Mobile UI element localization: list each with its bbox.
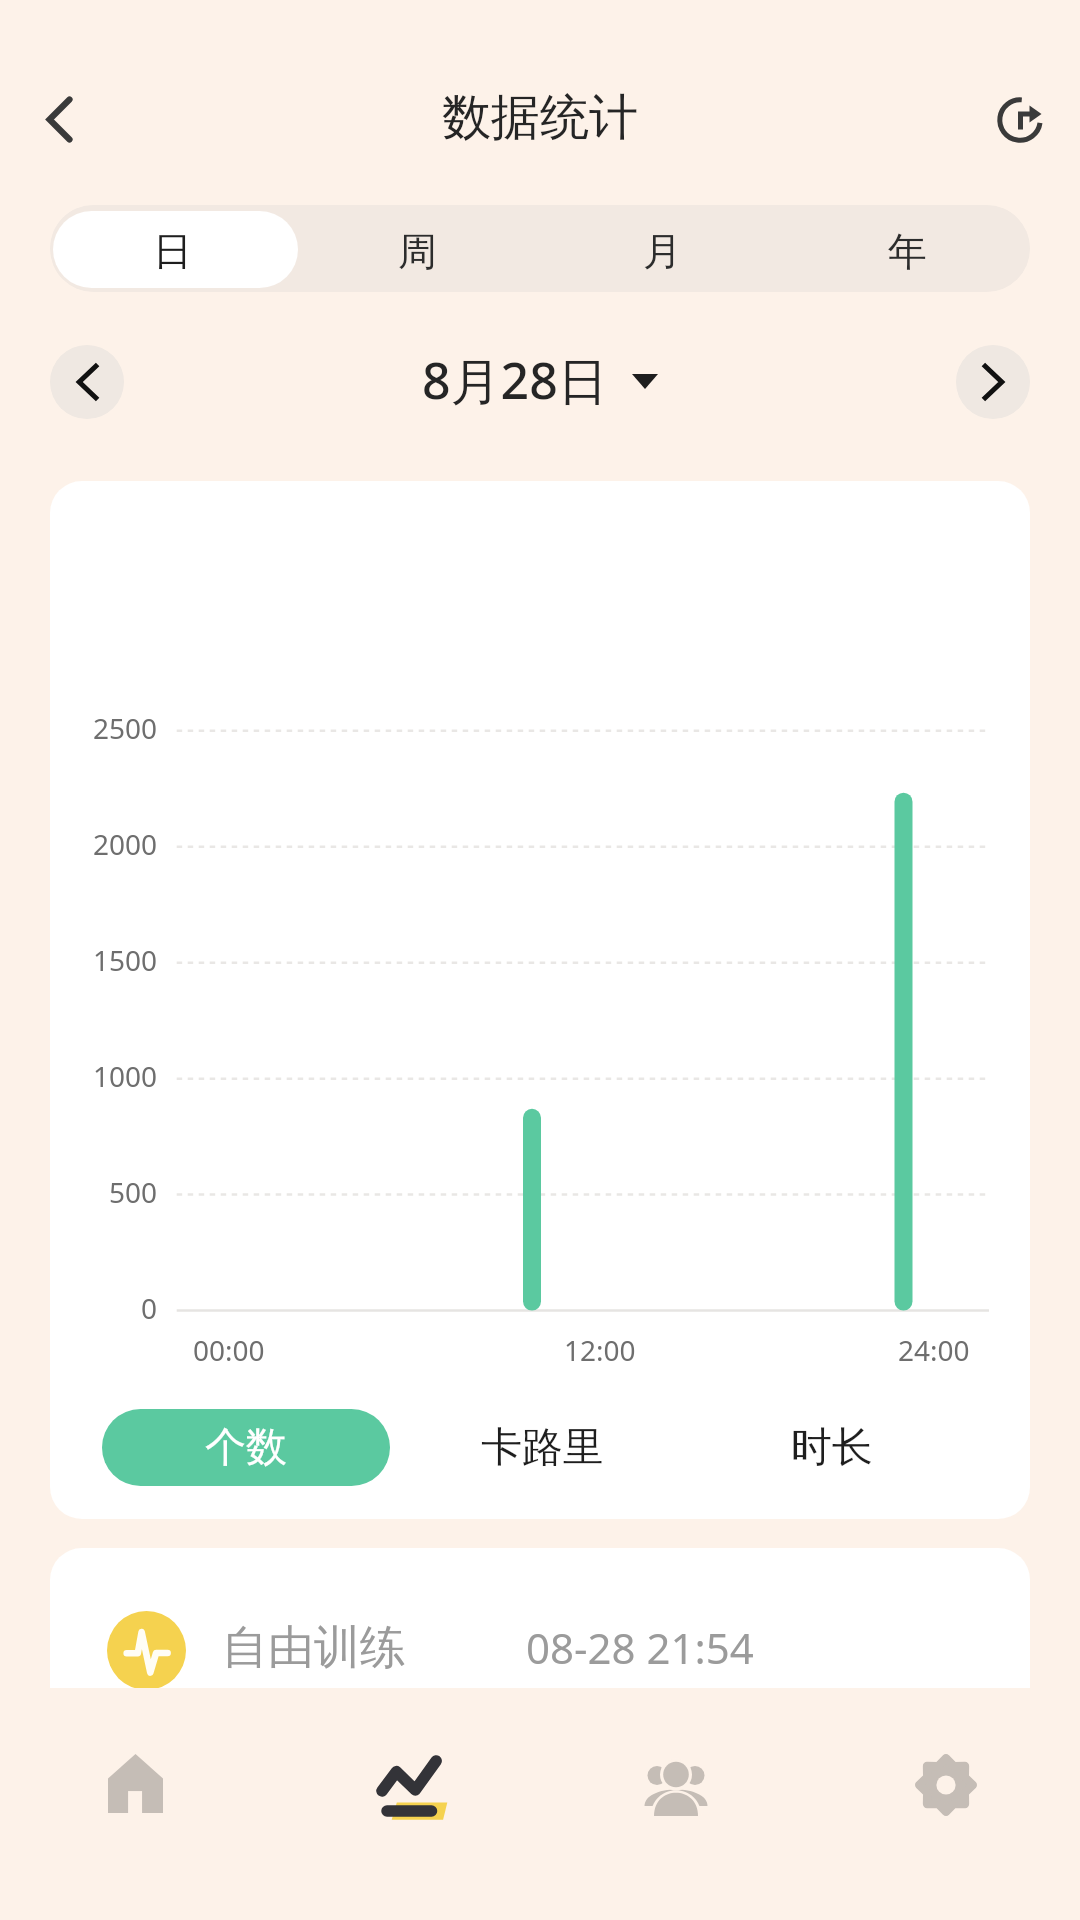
button[interactable]: 卡路里 [422, 1409, 662, 1486]
button[interactable]: Statistics [270, 1688, 540, 1878]
staticText: 日 [153, 227, 192, 276]
button[interactable]: 个数 [102, 1409, 390, 1486]
button[interactable]: Back [19, 79, 99, 159]
staticText: 周 [398, 227, 437, 276]
staticText: 月 [643, 227, 682, 276]
staticText: 2000 [93, 825, 158, 863]
button[interactable]: 日 [50, 205, 295, 292]
staticText: 2500 [93, 709, 158, 747]
button[interactable]: 年 [785, 205, 1030, 292]
button[interactable]: 月 [540, 205, 785, 292]
button[interactable]: 自由训练 [50, 1548, 1030, 1752]
staticText: 1000 [93, 1057, 158, 1095]
staticText: 24:00 [898, 1331, 970, 1369]
button[interactable]: Home [0, 1688, 270, 1878]
button[interactable]: Share [980, 80, 1060, 160]
staticText: 12:00 [564, 1331, 636, 1369]
staticText: 数据统计 [442, 87, 638, 149]
staticText: 卡路里 [481, 1422, 604, 1474]
button[interactable]: Previous day [50, 345, 124, 419]
staticText: 00:00 [193, 1331, 265, 1369]
button[interactable]: Friends [540, 1688, 810, 1878]
staticText: 08-28 21:54 [526, 1619, 754, 1676]
button[interactable]: Next day [956, 345, 1030, 419]
button[interactable]: 时长 [712, 1409, 952, 1486]
staticText: 0 [141, 1289, 158, 1327]
staticText: 年 [888, 227, 927, 276]
staticText: 500 [109, 1173, 158, 1211]
staticText: 时长 [791, 1422, 873, 1474]
staticText: 个数 [205, 1422, 287, 1474]
button[interactable]: 周 [295, 205, 540, 292]
staticText: 自由训练 [222, 1619, 406, 1677]
button[interactable]: Settings [810, 1688, 1080, 1878]
staticText: 8月28日 [422, 346, 608, 414]
staticText: 1500 [93, 941, 158, 979]
